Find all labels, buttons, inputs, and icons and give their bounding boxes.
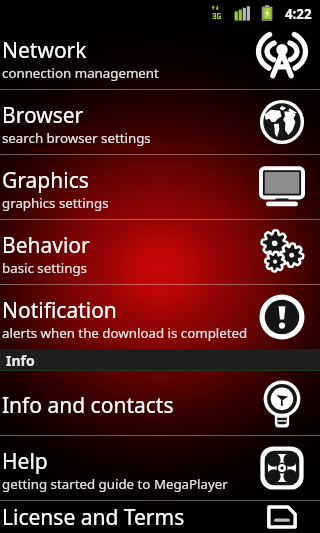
staticText: License and Terms	[2, 503, 185, 532]
staticText: graphics settings	[2, 194, 109, 212]
other: Network settings	[259, 34, 305, 80]
staticText: Help	[2, 447, 48, 476]
other: Graphics settings	[259, 164, 305, 210]
staticText: 4:22	[285, 5, 312, 23]
button[interactable]: Help	[0, 436, 320, 500]
staticText: basic settings	[2, 259, 87, 277]
staticText: connection management	[2, 64, 159, 82]
other: Behavior settings	[259, 229, 305, 275]
button[interactable]: Network	[0, 25, 320, 89]
button[interactable]: Graphics	[0, 155, 320, 219]
staticText: Notification	[2, 296, 117, 325]
other: Help	[259, 445, 305, 491]
staticText: alerts when the download is completed	[2, 324, 248, 342]
button[interactable]: Browser	[0, 90, 320, 154]
staticText: getting started guide to MegaPlayer	[2, 475, 228, 493]
other: Browser settings	[259, 99, 305, 145]
staticText: Info and contacts	[2, 391, 174, 420]
button[interactable]: License and Terms	[0, 501, 320, 533]
button[interactable]: Notification	[0, 285, 320, 349]
other: License and Terms	[259, 501, 305, 533]
staticText: Browser	[2, 101, 84, 130]
staticText: search browser settings	[2, 129, 151, 147]
staticText: Network	[2, 36, 87, 65]
staticText: Graphics	[2, 166, 89, 195]
staticText: Info	[6, 351, 35, 370]
button[interactable]: Behavior	[0, 220, 320, 284]
staticText: Behavior	[2, 231, 90, 260]
other: Notification settings	[259, 294, 305, 340]
button[interactable]: Info and contacts	[0, 371, 320, 435]
other: Info and contacts	[259, 380, 305, 426]
